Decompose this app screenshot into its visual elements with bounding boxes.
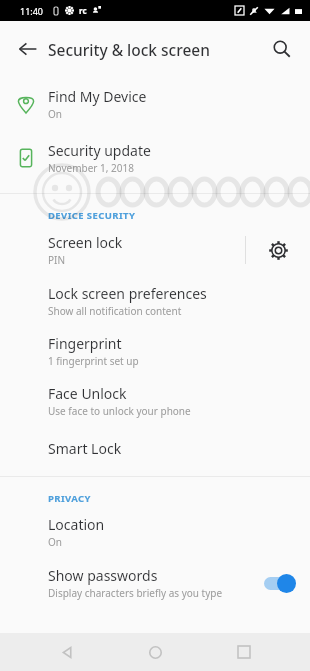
button[interactable]: Screen lock settings <box>246 224 310 276</box>
button[interactable]: Back <box>45 633 89 671</box>
staticText: November 1, 2018 <box>48 161 134 175</box>
button[interactable]: Find My Device <box>0 77 310 131</box>
button[interactable]: Location <box>0 507 310 557</box>
button[interactable]: Face Unlock <box>0 376 310 426</box>
button[interactable]: Fingerprint <box>0 326 310 376</box>
button[interactable]: Lock screen preferences <box>0 276 310 326</box>
staticText: Display characters briefly as you type <box>48 586 223 600</box>
staticText: Show passwords <box>48 566 158 585</box>
staticText: Find My Device <box>48 87 147 106</box>
staticText: Security & lock screen <box>48 39 210 60</box>
staticText: Smart Lock <box>48 439 122 458</box>
staticText: 11:40 <box>20 5 44 17</box>
button[interactable]: Back <box>8 29 48 69</box>
staticText: Location <box>48 515 105 534</box>
button[interactable]: Recents <box>222 633 266 671</box>
button[interactable]: Search <box>262 29 302 69</box>
staticText: 1 fingerprint set up <box>48 354 139 368</box>
staticText: PIN <box>48 253 66 267</box>
staticText: DEVICE SECURITY <box>48 209 136 222</box>
staticText: On <box>48 535 62 549</box>
staticText: Show all notification content <box>48 304 182 318</box>
staticText: Use face to unlock your phone <box>48 404 191 418</box>
button[interactable]: Home <box>133 633 177 671</box>
staticText: Fingerprint <box>48 334 122 353</box>
staticText: Face Unlock <box>48 384 127 403</box>
button[interactable]: Security update <box>0 131 310 185</box>
button[interactable]: Screen lock <box>0 224 245 276</box>
staticText: Screen lock <box>48 233 123 252</box>
staticText: On <box>48 107 62 121</box>
button[interactable]: Show passwords <box>0 557 310 609</box>
staticText: Lock screen preferences <box>48 284 207 303</box>
staticText: Security update <box>48 141 151 160</box>
button[interactable]: Smart Lock <box>0 426 310 470</box>
staticText: PRIVACY <box>48 492 91 505</box>
staticText: rc <box>79 5 87 16</box>
